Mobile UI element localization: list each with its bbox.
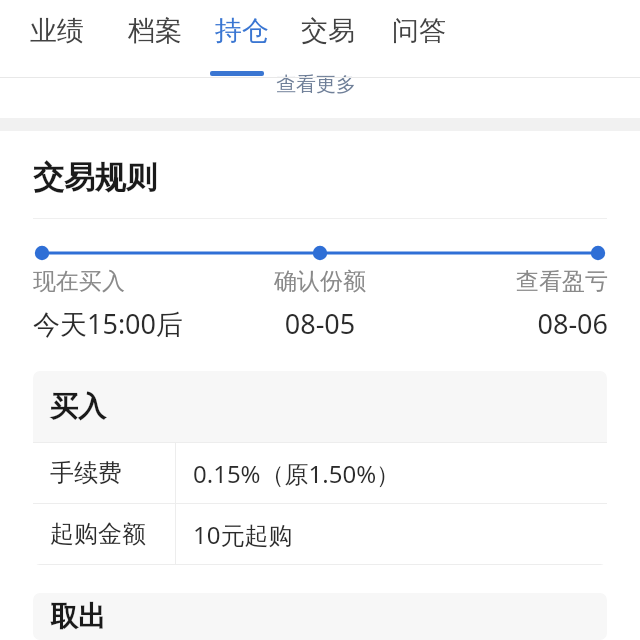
staticText: 取出 [50, 599, 106, 634]
staticText: 起购金额 [50, 519, 146, 549]
staticText: 问答 [392, 14, 446, 48]
button[interactable]: 业绩 [30, 6, 84, 56]
staticText: 档案 [128, 14, 182, 48]
staticText: 手续费 [50, 458, 122, 488]
button[interactable]: 问答 [392, 6, 446, 56]
staticText: 今天15:00后 [33, 305, 224, 342]
staticText: 持仓 [215, 14, 269, 48]
button[interactable]: 交易 [301, 6, 355, 56]
staticText: 查看更多 [276, 72, 356, 97]
staticText: 交易规则 [33, 158, 157, 197]
staticText: 08-05 [224, 305, 416, 342]
staticText: 交易 [301, 14, 355, 48]
staticText: 确认份额 [224, 267, 416, 296]
button[interactable]: 档案 [128, 6, 182, 56]
staticText: 现在买入 [33, 267, 224, 296]
staticText: 买入 [50, 389, 106, 424]
staticText: 0.15%（原1.50%） [193, 457, 401, 490]
staticText: 08-06 [416, 305, 608, 342]
staticText: 查看盈亏 [416, 267, 608, 296]
staticText: 业绩 [30, 14, 84, 48]
staticText: 10元起购 [193, 518, 293, 551]
button[interactable]: 持仓 [215, 6, 269, 56]
